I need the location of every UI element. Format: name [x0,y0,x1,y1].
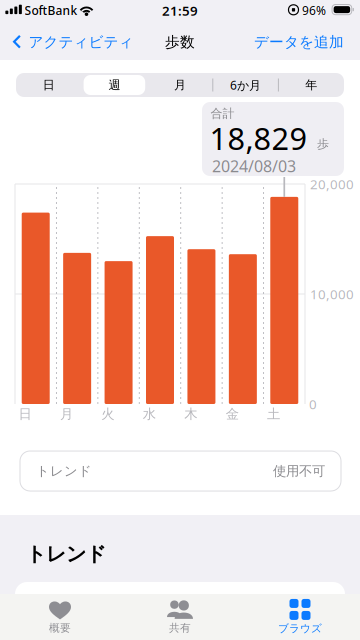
staticText: 6か月 [230,77,261,93]
staticText: 年 [305,78,317,92]
staticText: 日 [18,406,31,422]
staticText: 月 [174,78,186,92]
staticText: 10,000 [310,285,354,303]
staticText: 月 [60,406,73,422]
button[interactable]: 日 [16,73,82,97]
staticText: 使用不可 [273,463,325,479]
staticText: 18,829 [209,118,307,158]
staticText: 週 [108,78,120,92]
staticText: 概要 [49,621,71,634]
button[interactable]: 6か月 [213,73,278,97]
staticText: 日 [43,78,55,92]
staticText: トレンド [36,463,92,479]
button[interactable]: 概要 [0,594,120,640]
button[interactable]: アクティビティ [4,25,141,59]
staticText: 20,000 [310,175,354,193]
staticText: 0 [309,395,317,413]
button[interactable]: トレンド [20,451,341,491]
staticText: ブラウズ [278,622,322,635]
staticText: 木 [184,406,197,422]
button[interactable]: 共有 [120,594,240,640]
staticText: SoftBank [24,2,77,18]
button[interactable]: 月 [147,73,213,97]
button[interactable]: 年 [278,73,344,97]
button[interactable]: ブラウズ [240,594,360,640]
staticText: 共有 [169,621,191,634]
staticText: データを追加 [254,33,344,51]
staticText: アクティビティ [28,33,133,51]
staticText: 土 [267,406,280,422]
staticText: 21:59 [162,2,198,19]
button[interactable]: 週 [82,73,147,97]
staticText: 歩数 [165,33,195,51]
staticText: 金 [226,406,239,422]
staticText: 96% [302,2,326,18]
staticText: 合計 [210,106,234,121]
staticText: トレンド [26,542,106,566]
button[interactable]: データを追加 [246,25,352,59]
staticText: 2024/08/03 [212,155,296,177]
staticText: 歩 [317,137,329,151]
staticText: 水 [143,406,156,422]
staticText: 火 [101,406,114,422]
